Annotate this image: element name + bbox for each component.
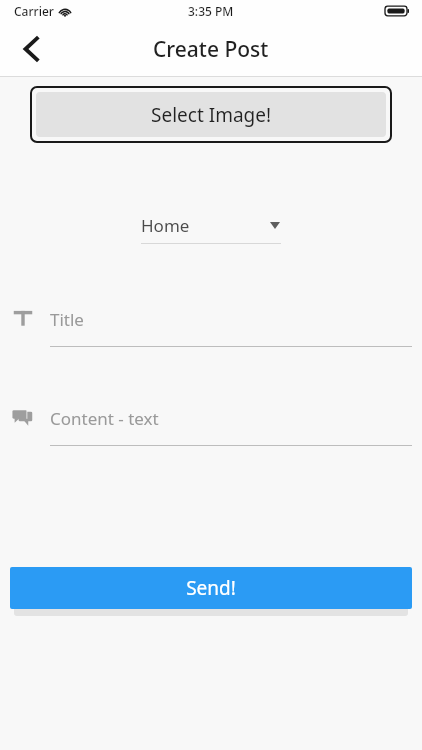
staticText: Select Image!: [151, 102, 272, 128]
staticText: 3:35 PM: [188, 3, 234, 19]
staticText: Title: [50, 308, 84, 331]
button[interactable]: Home: [141, 212, 281, 244]
button[interactable]: Back: [10, 28, 52, 70]
staticText: Home: [141, 214, 190, 237]
button[interactable]: Title: [12, 306, 412, 347]
staticText: Send!: [186, 575, 236, 601]
staticText: Content - text: [50, 407, 159, 430]
button[interactable]: Send!: [10, 567, 412, 609]
button[interactable]: Select Image!: [36, 92, 386, 137]
staticText: Carrier: [14, 3, 54, 19]
staticText: Create Post: [153, 35, 269, 64]
button[interactable]: Content - text: [12, 405, 412, 446]
